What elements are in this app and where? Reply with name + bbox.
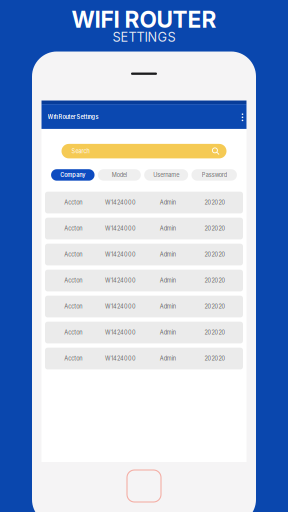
staticText: Company	[60, 172, 85, 178]
staticText: Accton	[64, 355, 82, 362]
staticText: SETTINGS	[112, 29, 175, 45]
staticText: Accton	[64, 277, 82, 284]
button[interactable]: Accton	[45, 322, 243, 343]
staticText: W1424000	[105, 199, 136, 206]
staticText: Password	[202, 172, 227, 178]
staticText: W1424000	[105, 225, 136, 232]
button[interactable]: Accton	[45, 296, 243, 317]
staticText: Wifi Router Settings	[47, 113, 98, 120]
button[interactable]: Username	[144, 169, 188, 181]
staticText: 202020	[204, 225, 225, 232]
staticText: W1424000	[105, 329, 136, 336]
staticText: Accton	[64, 303, 82, 310]
staticText: Admin	[160, 277, 176, 284]
staticText: Accton	[64, 225, 82, 232]
staticText: Model	[112, 172, 127, 178]
staticText: 202020	[204, 355, 225, 362]
staticText: Admin	[160, 225, 176, 232]
staticText: Username	[153, 172, 179, 178]
button[interactable]: Accton	[45, 192, 243, 213]
button[interactable]: Company	[51, 169, 94, 181]
staticText: Accton	[64, 329, 82, 336]
button[interactable]: Accton	[45, 218, 243, 239]
staticText: WIFI ROUTER	[71, 6, 216, 33]
button[interactable]: Password	[191, 169, 237, 181]
button[interactable]: Model	[98, 169, 141, 181]
staticText: W1424000	[105, 251, 136, 258]
button[interactable]: Home	[127, 470, 161, 502]
staticText: 202020	[204, 329, 225, 336]
staticText: Search	[71, 148, 89, 155]
button[interactable]: Accton	[45, 348, 243, 369]
button[interactable]: Accton	[45, 270, 243, 291]
staticText: 202020	[204, 251, 225, 258]
staticText: W1424000	[105, 277, 136, 284]
staticText: W1424000	[105, 303, 136, 310]
staticText: Accton	[64, 251, 82, 258]
button[interactable]: More options	[240, 112, 245, 123]
staticText: Admin	[160, 199, 176, 206]
staticText: Admin	[160, 251, 176, 258]
staticText: Admin	[160, 303, 176, 310]
staticText: Accton	[64, 199, 82, 206]
button[interactable]: Accton	[45, 244, 243, 265]
staticText: Admin	[160, 355, 176, 362]
button[interactable]: Search	[61, 144, 226, 158]
staticText: 202020	[204, 199, 225, 206]
staticText: 202020	[204, 277, 225, 284]
staticText: 202020	[204, 303, 225, 310]
staticText: Admin	[160, 329, 176, 336]
staticText: W1424000	[105, 355, 136, 362]
